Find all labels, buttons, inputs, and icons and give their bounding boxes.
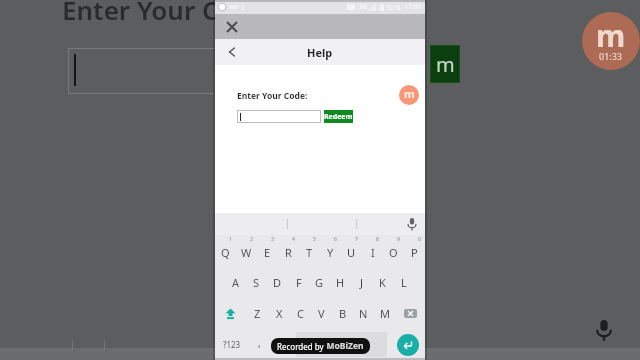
staticText: m [436,51,455,78]
button[interactable]: A [225,267,246,298]
button[interactable]: P [404,235,425,267]
button[interactable]: K [372,267,393,298]
button[interactable]: C [290,298,311,329]
button[interactable]: O [383,235,404,267]
staticText: ?123 [223,339,241,350]
button[interactable]: T [299,235,320,267]
button[interactable]: S [246,267,267,298]
button[interactable]: U [341,235,362,267]
button[interactable]: Microphone [586,312,622,348]
staticText: I [371,245,375,260]
staticText: 17:01 [404,2,422,12]
staticText: Help [307,45,333,60]
button[interactable]: Change language [269,329,293,360]
button[interactable]: X [268,298,290,329]
staticText: W [241,245,252,260]
button[interactable]: L [393,267,414,298]
button[interactable]: B [332,298,353,329]
staticText: 0 [418,236,421,243]
button[interactable]: J [351,267,372,298]
staticText: MoBiZen [326,340,364,352]
staticText: N [359,306,368,321]
staticText: F [296,275,302,290]
staticText: Q [221,245,230,260]
button[interactable]: Space [296,332,387,357]
button[interactable]: H [330,267,351,298]
staticText: 1 [229,236,232,243]
button[interactable]: Backspace [395,298,425,329]
button[interactable]: I [362,235,383,267]
staticText: V [318,306,325,321]
button[interactable]: Q [215,235,236,267]
staticText: U [347,245,356,260]
button[interactable]: G [309,267,330,298]
staticText: , [258,336,261,350]
button[interactable]: F [288,267,309,298]
staticText: 8 [376,236,379,243]
staticText: 6 [334,236,337,243]
staticText: 30 % [386,3,401,12]
staticText: 2 [250,236,253,243]
button[interactable]: R [278,235,299,267]
button[interactable]: Back [223,43,241,61]
staticText: O [389,245,398,260]
button[interactable]: Close [223,18,241,36]
staticText: R [285,245,292,260]
staticText: Y [327,245,334,260]
staticText: 3 [271,236,274,243]
button[interactable]: Voice input [405,217,419,231]
button[interactable]: ?123 [215,329,249,360]
staticText: B [339,306,347,321]
staticText: H [336,275,345,290]
button[interactable]: Y [320,235,341,267]
staticText: Enter Your Code: [237,90,308,102]
staticText: Z [254,306,261,321]
button[interactable]: N [353,298,374,329]
button[interactable]: Enter [390,329,425,360]
button[interactable]: W [236,235,257,267]
button[interactable]: Redeem [324,110,353,123]
button[interactable]: Shift [215,298,246,329]
staticText: Enter Your Co [62,0,235,27]
staticText: E [264,245,271,260]
staticText: C [297,306,304,321]
staticText: A [232,275,240,290]
staticText: J [360,275,364,290]
staticText: L [401,275,407,290]
staticText: QWERTY [329,341,354,349]
staticText: S [253,275,260,290]
button[interactable]: Z [246,298,268,329]
staticText: m [404,86,415,101]
button[interactable] [237,110,321,123]
staticText: 3G [358,2,368,12]
staticText: m [596,15,626,56]
staticText: Redeem [324,112,353,122]
button[interactable]: , [249,329,269,360]
staticText: 9 [397,236,400,243]
button[interactable] [356,213,425,235]
button[interactable]: V [311,298,332,329]
staticText: Recorded by [277,341,326,352]
staticText: T [306,245,313,260]
button[interactable]: E [257,235,278,267]
button[interactable]: M [374,298,395,329]
staticText: X [276,306,283,321]
staticText: K [379,275,386,290]
staticText: 5 [313,236,316,243]
staticText: P [411,245,418,260]
button[interactable]: D [267,267,288,298]
staticText: 7 [355,236,358,243]
staticText: 01:33 [599,50,623,62]
staticText: D [273,275,282,290]
staticText: 4 [292,236,295,243]
staticText: M [380,306,390,321]
staticText: G [315,275,324,290]
